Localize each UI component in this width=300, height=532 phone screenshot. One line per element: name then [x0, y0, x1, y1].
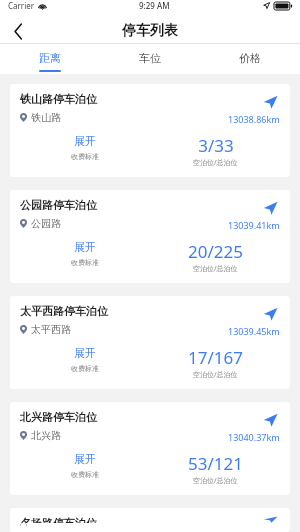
staticText: 价格	[239, 51, 261, 65]
staticText: 20/225	[188, 240, 243, 263]
staticText: Carrier	[8, 0, 35, 11]
button[interactable]: Back	[0, 18, 36, 44]
staticText: 13038.86km	[228, 113, 280, 125]
button[interactable]: 展开	[71, 134, 99, 161]
staticText: 太平西路	[31, 323, 71, 336]
staticText: 9:29 AM	[139, 0, 170, 11]
button[interactable]: Navigate	[260, 410, 280, 430]
staticText: 53/121	[188, 452, 243, 475]
staticText: 铁山路停车泊位	[20, 92, 97, 106]
button[interactable]: 铁山路停车泊位	[10, 84, 290, 177]
button[interactable]: 展开	[71, 452, 99, 479]
staticText: 收费标准	[71, 470, 99, 479]
button[interactable]: 车位	[100, 44, 200, 74]
staticText: 展开	[74, 452, 96, 466]
button[interactable]: Navigate	[260, 516, 280, 523]
button[interactable]: 展开	[71, 240, 99, 267]
staticText: 17/167	[188, 346, 243, 369]
staticText: 收费标准	[71, 258, 99, 267]
staticText: 名扬路停车泊位	[20, 516, 97, 523]
staticText: 空泊位/总泊位	[193, 264, 238, 274]
staticText: 展开	[74, 346, 96, 360]
staticText: 13039.41km	[228, 219, 280, 231]
staticText: 公园路停车泊位	[20, 198, 97, 212]
staticText: 收费标准	[71, 364, 99, 373]
staticText: 铁山路	[31, 111, 61, 124]
button[interactable]: 价格	[200, 44, 300, 74]
button[interactable]: 展开	[71, 346, 99, 373]
staticText: 收费标准	[71, 152, 99, 161]
staticText: 空泊位/总泊位	[193, 476, 238, 486]
button[interactable]: Navigate	[260, 92, 280, 112]
staticText: 空泊位/总泊位	[193, 158, 238, 168]
staticText: 车位	[139, 51, 161, 65]
staticText: 13039.45km	[228, 325, 280, 337]
staticText: 公园路	[31, 217, 61, 230]
staticText: 空泊位/总泊位	[193, 370, 238, 380]
button[interactable]: 太平西路停车泊位	[10, 296, 290, 389]
staticText: 展开	[74, 134, 96, 148]
staticText: 3/33	[198, 134, 234, 157]
staticText: 北兴路	[31, 429, 61, 442]
staticText: 太平西路停车泊位	[20, 304, 108, 318]
staticText: 13040.37km	[228, 431, 280, 443]
button[interactable]: 距离	[0, 44, 100, 74]
button[interactable]: Navigate	[260, 304, 280, 324]
button[interactable]: 北兴路停车泊位	[10, 402, 290, 495]
staticText: 距离	[39, 51, 61, 65]
button[interactable]: 名扬路停车泊位	[10, 508, 290, 532]
staticText: 展开	[74, 240, 96, 254]
button[interactable]: 公园路停车泊位	[10, 190, 290, 283]
staticText: 停车列表	[122, 22, 178, 40]
staticText: 北兴路停车泊位	[20, 410, 97, 424]
button[interactable]: Navigate	[260, 198, 280, 218]
